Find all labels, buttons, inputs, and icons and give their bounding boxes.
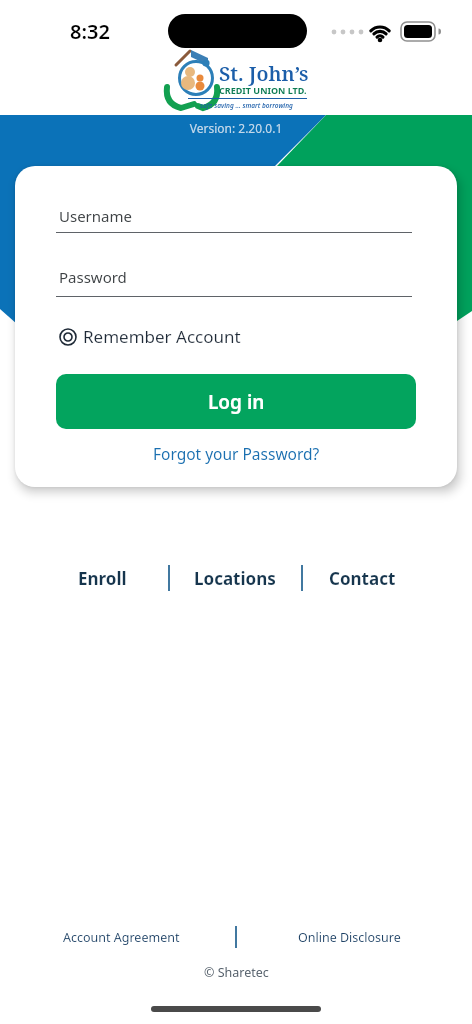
- staticText: Remember Account: [83, 325, 241, 348]
- staticText: St. John’s: [219, 60, 309, 87]
- staticText: Log in: [208, 389, 265, 415]
- button[interactable]: Online Disclosure: [289, 925, 409, 949]
- button[interactable]: Log in: [56, 374, 416, 429]
- staticText: Version: 2.20.0.1: [0, 120, 472, 136]
- staticText: Enroll: [78, 567, 127, 590]
- staticText: Contact: [329, 567, 396, 590]
- button[interactable]: Contact: [312, 563, 412, 593]
- staticText: Username: [59, 206, 132, 226]
- staticText: Password: [59, 267, 127, 287]
- staticText: Forgot your Password?: [153, 443, 320, 464]
- button[interactable]: Remember Account: [56, 323, 296, 353]
- button[interactable]: Locations: [185, 563, 285, 593]
- staticText: © Sharetec: [204, 964, 269, 981]
- staticText: safe saving ... smart borrowing: [200, 101, 293, 110]
- staticText: Account Agreement: [63, 929, 180, 946]
- staticText: Locations: [194, 567, 276, 590]
- staticText: Online Disclosure: [298, 929, 401, 946]
- staticText: CREDIT UNION LTD.: [219, 84, 307, 96]
- button[interactable]: Forgot your Password?: [116, 438, 356, 468]
- button[interactable]: Account Agreement: [61, 925, 181, 949]
- staticText: 8:32: [60, 18, 120, 45]
- button[interactable]: Enroll: [52, 563, 152, 593]
